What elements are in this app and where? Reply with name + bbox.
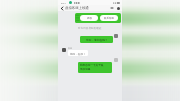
staticText: 9:41 bbox=[61, 1, 66, 4]
button[interactable]: 授权 bbox=[80, 15, 98, 21]
button[interactable]: 您好，在的！ bbox=[68, 50, 88, 56]
staticText: 客服 bbox=[68, 47, 72, 50]
staticText: 您好，在的！ bbox=[70, 52, 86, 55]
staticText: 号的问题 bbox=[80, 67, 91, 70]
staticText: 你好，请问在吗？ bbox=[86, 38, 108, 41]
staticText: 虚拟客服上线通 bbox=[65, 6, 89, 10]
staticText: 联系客服 bbox=[104, 17, 114, 20]
staticText: 授权 bbox=[87, 17, 92, 20]
button[interactable]: Back bbox=[60, 5, 64, 11]
button[interactable]: 我想咨询一下关于账 bbox=[78, 62, 112, 73]
button[interactable]: More options bbox=[116, 5, 120, 11]
button[interactable]: 联系客服 bbox=[100, 15, 118, 21]
button[interactable]: 你好，请问在吗？ bbox=[80, 36, 113, 43]
staticText: 我想咨询一下关于账 bbox=[80, 63, 104, 66]
button[interactable]: Minimise bbox=[110, 5, 114, 11]
staticText: 对方已开启好友验证 bbox=[78, 26, 102, 29]
